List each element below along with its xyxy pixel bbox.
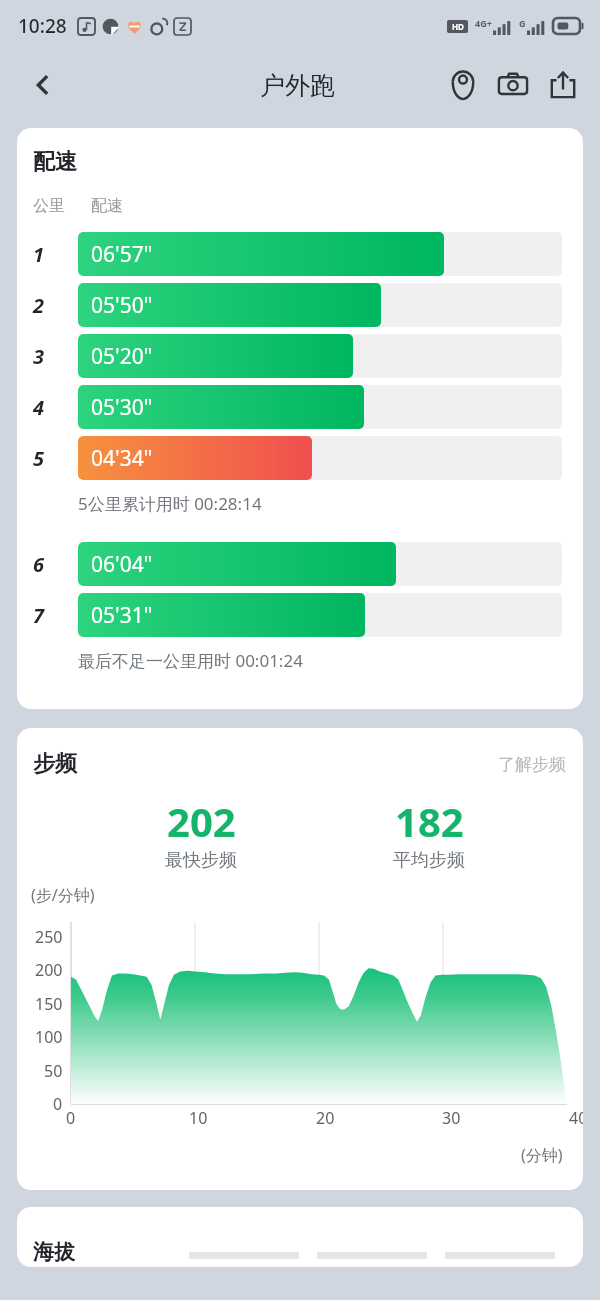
button[interactable]: Map bbox=[438, 60, 488, 110]
staticText: 10:28 bbox=[18, 13, 67, 39]
staticText: 了解步频 bbox=[498, 754, 566, 775]
staticText: 平均步频 bbox=[393, 849, 465, 872]
staticText: 05'31" bbox=[91, 601, 153, 630]
staticText: 06'57" bbox=[91, 240, 153, 269]
staticText: 3 bbox=[33, 343, 45, 370]
staticText: 最快步频 bbox=[165, 849, 237, 872]
staticText: G bbox=[519, 17, 526, 29]
staticText: 配速 bbox=[33, 148, 77, 176]
staticText: 06'04" bbox=[91, 550, 153, 579]
button[interactable]: 步频 bbox=[17, 728, 583, 1190]
button[interactable]: Camera bbox=[488, 60, 538, 110]
staticText: 最后不足一公里用时 00:01:24 bbox=[78, 649, 303, 672]
staticText: 步频 bbox=[33, 750, 77, 778]
staticText: 30 bbox=[442, 1107, 461, 1129]
staticText: 40 bbox=[569, 1107, 583, 1129]
staticText: 4G+ bbox=[475, 17, 492, 29]
staticText: 200 bbox=[35, 959, 63, 981]
staticText: 6 bbox=[33, 551, 45, 578]
staticText: 0 bbox=[66, 1107, 76, 1129]
staticText: 20 bbox=[316, 1107, 335, 1129]
button[interactable]: 海拔 bbox=[17, 1207, 583, 1267]
staticText: 4 bbox=[33, 394, 45, 421]
staticText: 公里 bbox=[33, 196, 65, 216]
staticText: 50 bbox=[44, 1060, 63, 1082]
button[interactable]: 配速 bbox=[17, 128, 583, 709]
staticText: 5 bbox=[33, 445, 45, 472]
staticText: (分钟) bbox=[521, 1144, 563, 1166]
staticText: 户外跑 bbox=[260, 70, 335, 101]
staticText: 202 bbox=[167, 794, 236, 848]
staticText: 05'20" bbox=[91, 342, 153, 371]
button[interactable]: Share bbox=[538, 60, 588, 110]
staticText: 0 bbox=[53, 1093, 63, 1115]
staticText: 05'50" bbox=[91, 291, 153, 320]
button[interactable]: 了解步频 bbox=[498, 754, 566, 775]
staticText: 100 bbox=[35, 1026, 63, 1048]
staticText: 5公里累计用时 00:28:14 bbox=[78, 492, 262, 515]
staticText: 04'34" bbox=[91, 444, 153, 473]
staticText: 2 bbox=[33, 292, 45, 319]
staticText: 海拔 bbox=[33, 1239, 75, 1265]
staticText: 250 bbox=[35, 926, 63, 948]
staticText: 182 bbox=[395, 794, 464, 848]
staticText: 05'30" bbox=[91, 393, 153, 422]
staticText: 7 bbox=[33, 602, 45, 629]
staticText: 150 bbox=[35, 993, 63, 1015]
staticText: 1 bbox=[33, 241, 45, 268]
staticText: 10 bbox=[189, 1107, 208, 1129]
staticText: (步/分钟) bbox=[31, 884, 95, 906]
button[interactable]: Back bbox=[20, 62, 66, 108]
staticText: 配速 bbox=[91, 196, 123, 216]
staticText: HD bbox=[452, 21, 464, 32]
